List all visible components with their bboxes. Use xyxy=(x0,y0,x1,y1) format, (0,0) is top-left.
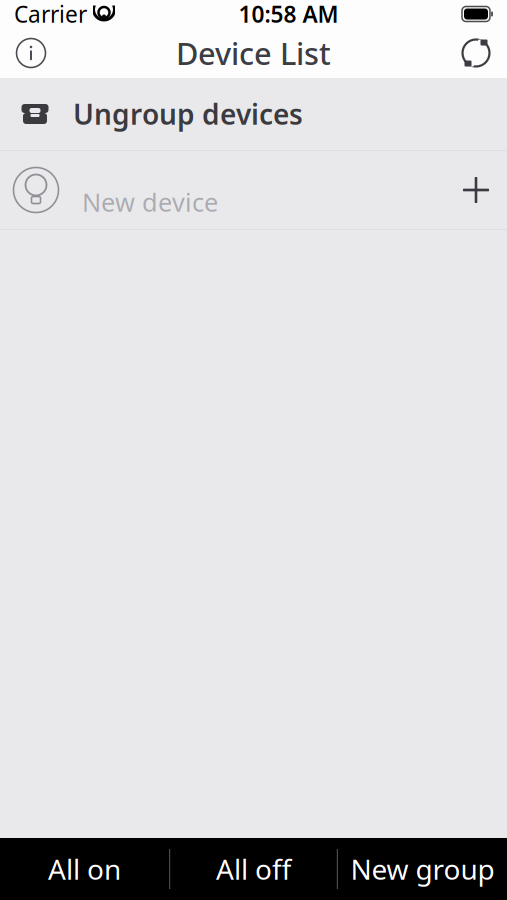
button[interactable]: All off xyxy=(169,838,338,900)
button[interactable]: All on xyxy=(0,838,169,900)
staticText: All off xyxy=(216,850,291,888)
staticText: Carrier xyxy=(14,0,87,29)
button[interactable]: Add device xyxy=(445,151,507,229)
staticText: Device List xyxy=(176,33,331,73)
button[interactable]: Ungroup devices xyxy=(0,78,507,150)
staticText: Ungroup devices xyxy=(73,95,303,133)
button[interactable]: New group xyxy=(338,838,507,900)
button[interactable]: Refresh xyxy=(445,28,507,78)
staticText: All on xyxy=(48,850,121,888)
staticText: New device xyxy=(82,185,218,219)
staticText: 10:58 AM xyxy=(238,0,338,29)
staticText: New group xyxy=(350,850,494,888)
button[interactable]: Information xyxy=(0,28,62,78)
